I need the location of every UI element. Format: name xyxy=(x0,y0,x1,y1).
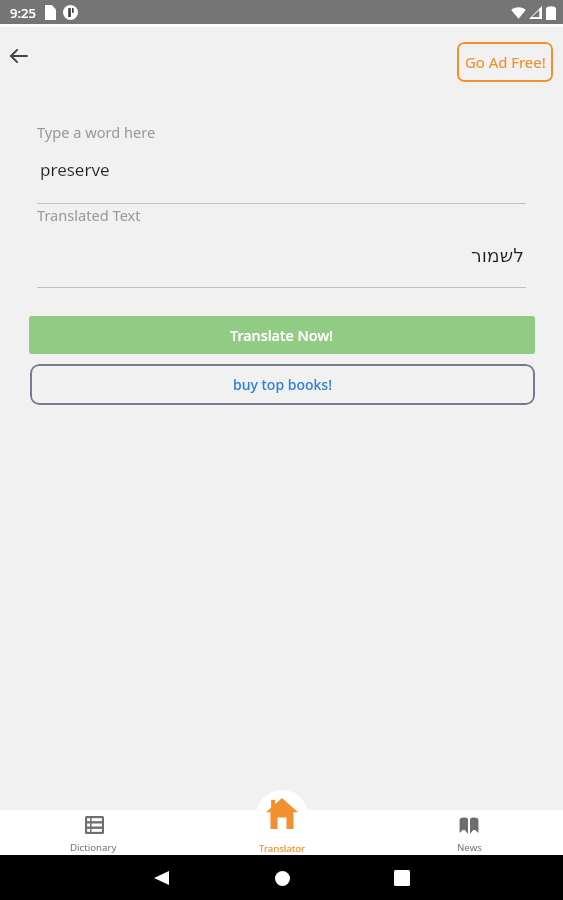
button[interactable]: Recents xyxy=(387,863,417,893)
button[interactable]: Back xyxy=(0,34,40,78)
button[interactable]: Go Ad Free! xyxy=(457,42,553,82)
staticText: Go Ad Free! xyxy=(465,52,546,72)
staticText: Type a word here xyxy=(37,122,156,142)
button[interactable]: buy top books! xyxy=(30,364,535,405)
staticText: Translator xyxy=(259,842,306,855)
staticText: 9:25 xyxy=(10,4,36,22)
staticText: Dictionary xyxy=(70,841,117,854)
staticText: Translated Text xyxy=(37,205,141,225)
staticText: preserve xyxy=(40,158,110,181)
button[interactable]: Translate Now! xyxy=(29,316,535,354)
staticText: News xyxy=(457,841,482,854)
button[interactable]: News xyxy=(375,810,563,855)
staticText: Translate Now! xyxy=(230,325,334,345)
button[interactable]: Back xyxy=(146,863,176,893)
staticText: buy top books! xyxy=(233,375,332,394)
staticText: לשמור xyxy=(37,244,524,266)
button[interactable]: Dictionary xyxy=(0,810,187,855)
button[interactable]: Translator xyxy=(232,798,332,855)
button[interactable]: Home xyxy=(267,863,297,893)
